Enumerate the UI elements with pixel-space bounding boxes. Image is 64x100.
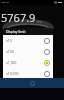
button[interactable]: Advertisement — [0, 78, 64, 88]
staticText: x100 — [6, 49, 14, 54]
staticText: Display limit — [6, 29, 26, 34]
button[interactable]: x10,000 — [3, 68, 53, 79]
staticText: mi — [37, 19, 42, 24]
staticText: 5767.9 — [1, 10, 36, 25]
button[interactable]: x100 — [3, 46, 53, 57]
button[interactable]: x1,000 — [3, 57, 53, 68]
staticText: x1,000 — [6, 60, 17, 65]
staticText: x10,000 — [6, 71, 19, 76]
staticText: x10 — [6, 38, 12, 43]
button[interactable]: x10 — [3, 35, 53, 46]
